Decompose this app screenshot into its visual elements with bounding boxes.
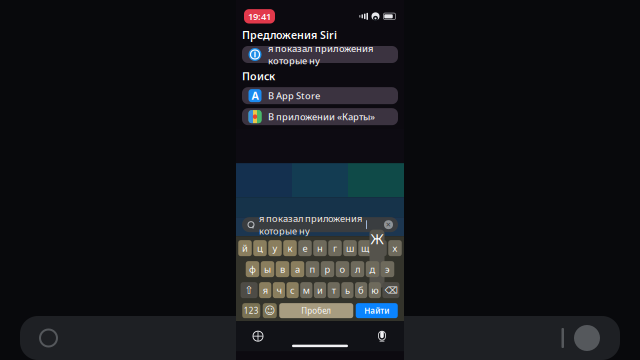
button[interactable]: д bbox=[366, 261, 379, 277]
staticText: ы bbox=[264, 263, 271, 275]
staticText: т bbox=[332, 284, 336, 296]
button[interactable]: с bbox=[286, 282, 299, 298]
button[interactable]: 123 bbox=[242, 303, 260, 318]
button[interactable]: ы bbox=[261, 261, 274, 277]
staticText: Найти bbox=[364, 305, 389, 316]
button[interactable]: Dictate bbox=[374, 328, 390, 344]
staticText: ю bbox=[371, 284, 378, 296]
button[interactable]: Найти bbox=[356, 303, 398, 318]
button[interactable]: A bbox=[242, 87, 398, 104]
staticText: у bbox=[272, 242, 277, 254]
button[interactable]: л bbox=[351, 261, 364, 277]
button[interactable]: г bbox=[328, 240, 342, 256]
staticText: ✕ bbox=[385, 221, 391, 228]
button[interactable]: ю bbox=[369, 282, 381, 298]
staticText: ⌫ bbox=[384, 285, 397, 295]
staticText: э bbox=[385, 263, 390, 275]
staticText: й bbox=[242, 242, 248, 254]
button[interactable]: о bbox=[336, 261, 349, 277]
button[interactable]: Emoji bbox=[263, 303, 277, 318]
button[interactable]: б bbox=[355, 282, 367, 298]
staticText: В приложении «Карты» bbox=[268, 110, 375, 123]
button[interactable]: р bbox=[321, 261, 334, 277]
staticText: л bbox=[355, 263, 360, 275]
staticText: 123 bbox=[244, 305, 259, 316]
staticText: п bbox=[309, 263, 315, 275]
staticText: ☺ bbox=[264, 305, 275, 317]
staticText: ч bbox=[276, 284, 281, 296]
staticText: ф bbox=[249, 263, 256, 275]
button[interactable]: э bbox=[381, 261, 394, 277]
staticText: и bbox=[317, 284, 323, 296]
staticText: х bbox=[392, 242, 397, 254]
staticText: Предложения Siri bbox=[242, 28, 337, 42]
staticText: я показал приложения которые ну bbox=[259, 212, 362, 237]
button[interactable]: ш bbox=[343, 240, 357, 256]
staticText: 19:41 bbox=[248, 10, 271, 22]
staticText: ь bbox=[345, 284, 350, 296]
staticText: е bbox=[302, 242, 307, 254]
button[interactable]: В приложении «Карты» bbox=[242, 108, 398, 125]
button[interactable]: Shift bbox=[241, 282, 258, 298]
staticText: м bbox=[303, 284, 310, 296]
staticText: В App Store bbox=[268, 89, 320, 102]
button[interactable]: а bbox=[291, 261, 304, 277]
button[interactable]: ц bbox=[253, 240, 267, 256]
staticText: а bbox=[295, 263, 300, 275]
button[interactable]: в bbox=[276, 261, 289, 277]
staticText: ш bbox=[346, 242, 354, 254]
staticText: Ж bbox=[370, 229, 383, 248]
staticText: г bbox=[333, 242, 337, 254]
staticText: я bbox=[263, 284, 268, 296]
button[interactable]: Delete bbox=[382, 282, 399, 298]
button[interactable]: я bbox=[259, 282, 271, 298]
button[interactable]: т bbox=[328, 282, 340, 298]
button[interactable]: у bbox=[268, 240, 282, 256]
staticText: к bbox=[287, 242, 292, 254]
staticText: в bbox=[280, 263, 285, 275]
button[interactable]: я показал приложения которые ну bbox=[242, 217, 398, 232]
button[interactable]: х bbox=[388, 240, 402, 256]
staticText: с bbox=[290, 284, 295, 296]
staticText: я показал приложения которые ну bbox=[268, 42, 373, 67]
button[interactable]: н bbox=[313, 240, 327, 256]
button[interactable]: Ж bbox=[369, 230, 384, 288]
button[interactable]: Change keyboard language bbox=[250, 328, 266, 344]
button[interactable]: щ bbox=[358, 240, 372, 256]
staticText: A bbox=[251, 89, 258, 103]
button[interactable]: й bbox=[238, 240, 252, 256]
staticText: о bbox=[339, 263, 345, 275]
button[interactable]: Пробел bbox=[279, 303, 353, 318]
staticText: д bbox=[369, 263, 375, 275]
button[interactable]: е bbox=[298, 240, 312, 256]
button[interactable]: я показал приложения которые ну bbox=[242, 46, 398, 63]
staticText: Поиск bbox=[242, 69, 275, 83]
button[interactable]: ь bbox=[341, 282, 353, 298]
staticText: ц bbox=[257, 242, 263, 254]
staticText: щ bbox=[361, 242, 369, 254]
button[interactable]: п bbox=[306, 261, 319, 277]
button[interactable]: м bbox=[300, 282, 312, 298]
staticText: Пробел bbox=[301, 305, 331, 316]
button[interactable]: к bbox=[283, 240, 297, 256]
button[interactable]: ф bbox=[246, 261, 259, 277]
button[interactable]: ч bbox=[273, 282, 285, 298]
staticText: р bbox=[324, 263, 330, 275]
button[interactable]: и bbox=[314, 282, 326, 298]
staticText: ⇧ bbox=[245, 284, 254, 296]
staticText: н bbox=[317, 242, 323, 254]
staticText: б bbox=[358, 284, 364, 296]
